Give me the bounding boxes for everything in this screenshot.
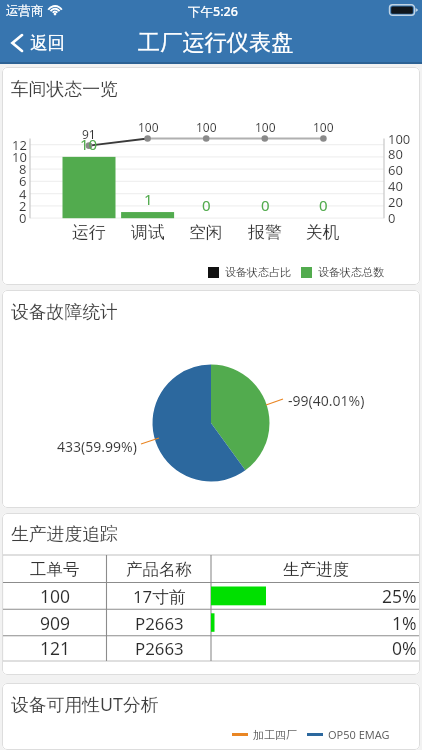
staticText: 返回 <box>30 32 65 54</box>
staticText: 100 <box>138 119 159 135</box>
staticText: 121 <box>40 636 71 660</box>
staticText: 工单号 <box>30 559 80 580</box>
staticText: 80 <box>388 145 403 163</box>
staticText: 生产进度追踪 <box>11 523 118 545</box>
staticText: 8 <box>19 160 27 178</box>
staticText: 车间状态一览 <box>11 78 118 100</box>
staticText: 设备可用性UT分析 <box>11 692 159 716</box>
staticText: 设备状态总数 <box>318 265 384 279</box>
staticText: 17寸前 <box>133 585 186 608</box>
staticText: 0 <box>202 195 211 215</box>
staticText: 10 <box>12 148 27 166</box>
staticText: 6 <box>19 172 27 190</box>
staticText: 91 <box>82 126 96 142</box>
staticText: 运行 <box>72 222 106 243</box>
staticText: 关机 <box>306 222 340 243</box>
staticText: P2663 <box>135 612 184 635</box>
staticText: 25% <box>382 584 417 608</box>
staticText: 设备状态占比 <box>225 265 291 279</box>
staticText: 0% <box>392 636 417 660</box>
staticText: 下午5:26 <box>188 3 238 20</box>
staticText: 909 <box>40 611 71 635</box>
staticText: 60 <box>388 161 403 179</box>
staticText: 4 <box>19 185 27 203</box>
staticText: 20 <box>388 193 403 211</box>
staticText: 0 <box>388 209 396 227</box>
button[interactable]: Back <box>0 26 77 60</box>
staticText: P2663 <box>135 637 184 660</box>
staticText: 调试 <box>131 222 165 243</box>
staticText: 40 <box>388 177 403 195</box>
staticText: 433(59.99%) <box>57 437 137 456</box>
staticText: OP50 EMAG <box>328 727 390 742</box>
staticText: 空闲 <box>189 222 223 243</box>
staticText: 100 <box>388 130 411 148</box>
staticText: 报警 <box>248 222 282 243</box>
staticText: -99(40.01%) <box>288 391 365 410</box>
staticText: 0 <box>319 195 328 215</box>
staticText: 100 <box>196 119 217 135</box>
staticText: 2 <box>19 197 27 215</box>
staticText: 12 <box>12 136 27 154</box>
other: Back <box>11 34 23 52</box>
staticText: 100 <box>313 119 334 135</box>
staticText: 设备故障统计 <box>11 301 118 323</box>
staticText: 10 <box>80 134 98 154</box>
staticText: 工厂运行仪表盘 <box>138 29 294 57</box>
staticText: 加工四厂 <box>253 728 297 742</box>
staticText: 100 <box>255 119 276 135</box>
staticText: 0 <box>19 209 27 227</box>
staticText: 0 <box>261 195 270 215</box>
staticText: 1% <box>392 611 417 635</box>
staticText: 生产进度 <box>283 559 349 580</box>
staticText: 产品名称 <box>126 559 192 580</box>
staticText: 100 <box>40 584 71 608</box>
staticText: 1 <box>144 189 153 209</box>
staticText: 运营商 <box>6 3 44 19</box>
